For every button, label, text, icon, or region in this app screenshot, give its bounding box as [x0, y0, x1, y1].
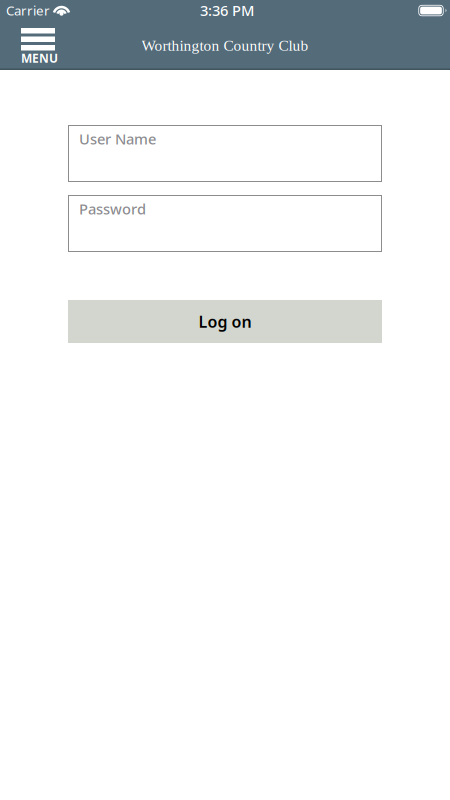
staticText: Worthington Country Club: [141, 37, 308, 54]
staticText: MENU: [21, 50, 58, 66]
staticText: Carrier: [6, 1, 50, 19]
staticText: Log on: [198, 311, 251, 332]
button[interactable]: Log on: [68, 300, 382, 343]
button[interactable]: Menu: [21, 28, 57, 62]
staticText: 3:36 PM: [200, 0, 254, 20]
staticText: User Name: [79, 129, 156, 148]
staticText: Password: [79, 199, 146, 218]
